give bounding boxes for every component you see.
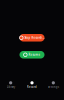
- button[interactable]: Library: [0, 78, 21, 92]
- staticText: Settings: [48, 85, 59, 89]
- staticText: Stop Recording: [24, 36, 44, 39]
- button[interactable]: Resume: [19, 51, 44, 58]
- staticText: Library: [7, 85, 15, 89]
- staticText: Resume: [28, 53, 40, 56]
- staticText: Record: [27, 85, 37, 89]
- button[interactable]: Settings: [43, 78, 64, 92]
- button[interactable]: Record: [21, 78, 43, 92]
- button[interactable]: Stop Recording: [19, 34, 44, 41]
